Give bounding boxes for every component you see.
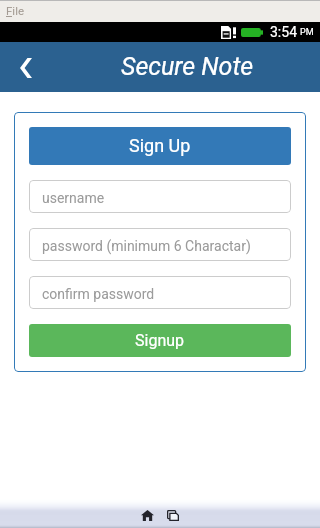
- staticText: confirm password: [42, 286, 155, 302]
- staticText: 3:54: [270, 24, 297, 40]
- staticText: File: [6, 4, 25, 17]
- staticText: Signup: [135, 331, 185, 350]
- button[interactable]: File: [6, 4, 25, 17]
- staticText: Sign Up: [129, 135, 191, 156]
- button[interactable]: Recent apps: [160, 499, 186, 521]
- button[interactable]: username: [29, 180, 291, 213]
- button[interactable]: Home: [134, 499, 160, 521]
- button[interactable]: Back: [0, 42, 46, 92]
- button[interactable]: password (minimum 6 Charactar): [29, 228, 291, 261]
- staticText: PM: [300, 27, 314, 38]
- staticText: password (minimum 6 Charactar): [42, 238, 251, 254]
- button[interactable]: confirm password: [29, 276, 291, 309]
- staticText: username: [42, 190, 105, 206]
- staticText: Secure Note: [121, 52, 254, 81]
- button[interactable]: Sign Up: [29, 127, 291, 165]
- button[interactable]: Signup: [29, 324, 291, 357]
